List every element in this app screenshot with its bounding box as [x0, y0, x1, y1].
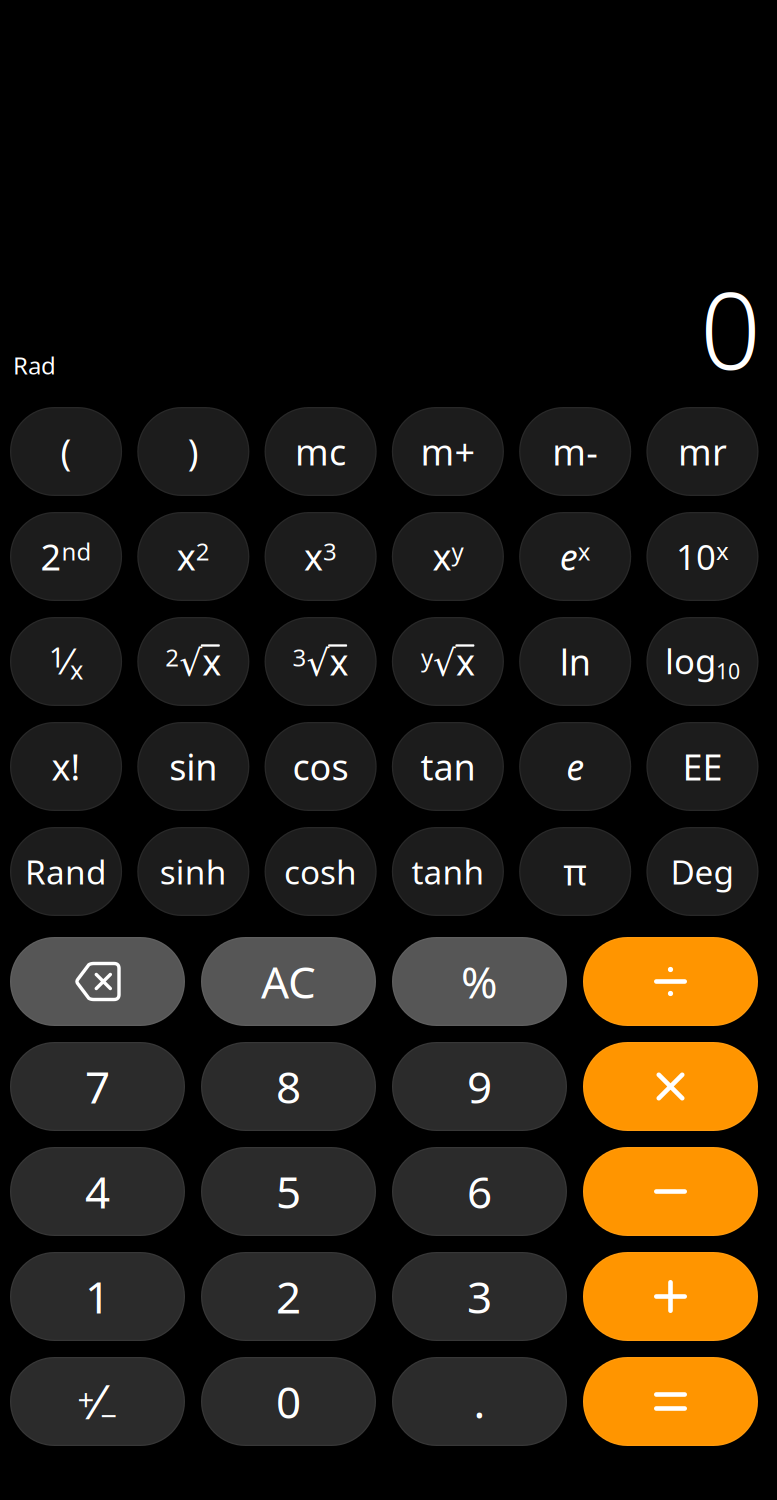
button[interactable]: e — [519, 722, 631, 811]
button[interactable]: 6 — [392, 1147, 567, 1236]
staticText: 9 — [467, 1057, 492, 1116]
staticText: x3 — [304, 533, 337, 580]
staticText: % — [461, 952, 498, 1011]
button[interactable]: ( — [10, 407, 122, 496]
staticText: mr — [678, 428, 727, 475]
staticText: x2 — [177, 533, 210, 580]
button[interactable]: ex — [519, 512, 631, 601]
staticText: log10 — [665, 638, 740, 685]
staticText: 2 — [276, 1267, 301, 1326]
button[interactable]: ) — [137, 407, 249, 496]
button[interactable]: m+ — [392, 407, 504, 496]
button[interactable]: 3√x — [265, 617, 377, 706]
staticText: ( — [60, 428, 71, 475]
staticText: tanh — [411, 849, 484, 894]
button[interactable]: 2 — [201, 1252, 376, 1341]
staticText: sinh — [160, 849, 227, 894]
button[interactable]: . — [392, 1357, 567, 1446]
button[interactable]: 0 — [201, 1357, 376, 1446]
staticText: Rand — [25, 849, 107, 894]
staticText: 6 — [467, 1162, 492, 1221]
staticText: cos — [293, 743, 349, 790]
staticText: 10x — [676, 533, 729, 579]
button[interactable]: tanh — [392, 827, 504, 916]
button[interactable]: sinh — [137, 827, 249, 916]
button[interactable]: Multiply — [583, 1042, 758, 1131]
staticText: 4 — [85, 1162, 110, 1221]
button[interactable]: mc — [265, 407, 377, 496]
staticText: xy — [432, 533, 463, 580]
button[interactable]: cos — [265, 722, 377, 811]
button[interactable]: tan — [392, 722, 504, 811]
staticText: 3 — [467, 1267, 492, 1326]
staticText: 0 — [276, 1372, 301, 1431]
staticText: 2√x — [165, 638, 221, 685]
staticText: 7 — [85, 1057, 110, 1116]
button[interactable]: Deg — [646, 827, 758, 916]
button[interactable]: 10x — [646, 512, 758, 601]
staticText: 1⁄x — [49, 637, 83, 686]
button[interactable]: 3 — [392, 1252, 567, 1341]
staticText: EE — [682, 743, 722, 790]
staticText: Deg — [670, 849, 734, 894]
button[interactable]: Rand — [10, 827, 122, 916]
staticText: 5 — [276, 1162, 301, 1221]
staticText: AC — [261, 952, 316, 1011]
button[interactable]: cosh — [265, 827, 377, 916]
button[interactable]: mr — [646, 407, 758, 496]
staticText: m- — [552, 428, 598, 475]
staticText: 1 — [85, 1267, 110, 1326]
button[interactable]: 1⁄x — [10, 617, 122, 706]
button[interactable]: ln — [519, 617, 631, 706]
staticText: y√x — [421, 638, 475, 685]
button[interactable]: x! — [10, 722, 122, 811]
button[interactable]: 4 — [10, 1147, 185, 1236]
button[interactable]: % — [392, 937, 567, 1026]
button[interactable]: Add — [583, 1252, 758, 1341]
button[interactable]: 5 — [201, 1147, 376, 1236]
button[interactable]: Delete — [10, 937, 185, 1026]
button[interactable]: log10 — [646, 617, 758, 706]
staticText: Rad — [13, 349, 56, 381]
button[interactable]: 2√x — [137, 617, 249, 706]
staticText: cosh — [284, 849, 357, 894]
staticText: x! — [51, 743, 80, 790]
button[interactable]: y√x — [392, 617, 504, 706]
staticText: mc — [295, 428, 346, 475]
button[interactable]: sin — [137, 722, 249, 811]
button[interactable]: m- — [519, 407, 631, 496]
button[interactable]: 2nd — [10, 512, 122, 601]
button[interactable]: x3 — [265, 512, 377, 601]
button[interactable]: 8 — [201, 1042, 376, 1131]
staticText: π — [563, 848, 587, 895]
staticText: . — [473, 1372, 485, 1431]
button[interactable]: Divide — [583, 937, 758, 1026]
staticText: tan — [420, 743, 475, 790]
staticText: e — [566, 743, 584, 790]
staticText: ) — [188, 428, 199, 475]
button[interactable]: Subtract — [583, 1147, 758, 1236]
button[interactable]: x2 — [137, 512, 249, 601]
staticText: 3√x — [293, 638, 349, 685]
staticText: m+ — [420, 428, 475, 475]
staticText: sin — [169, 743, 217, 790]
staticText: 8 — [276, 1057, 301, 1116]
button[interactable]: Equals — [583, 1357, 758, 1446]
button[interactable]: 9 — [392, 1042, 567, 1131]
staticText: 0 — [700, 257, 761, 399]
staticText: +⁄− — [77, 1369, 117, 1434]
staticText: 2nd — [40, 533, 91, 580]
button[interactable]: 1 — [10, 1252, 185, 1341]
button[interactable]: π — [519, 827, 631, 916]
button[interactable]: AC — [201, 937, 376, 1026]
button[interactable]: xy — [392, 512, 504, 601]
staticText: ln — [560, 638, 591, 685]
button[interactable]: 7 — [10, 1042, 185, 1131]
button[interactable]: EE — [646, 722, 758, 811]
button[interactable]: Toggle sign — [10, 1357, 185, 1446]
staticText: ex — [560, 533, 591, 580]
